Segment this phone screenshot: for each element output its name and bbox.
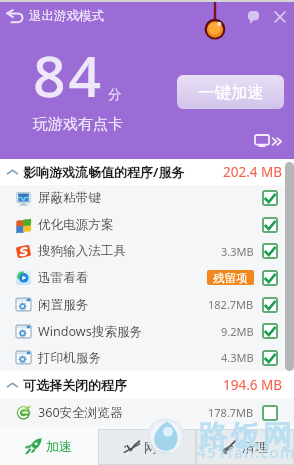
staticText: 451fan.com — [197, 442, 294, 462]
staticText: 分 — [108, 86, 122, 103]
staticText: 屏蔽粘带键 — [38, 190, 101, 206]
button[interactable]: Windows搜索服务 — [16, 318, 278, 344]
button[interactable]: 清理 — [196, 429, 294, 465]
button[interactable]: Toggle item — [262, 323, 278, 339]
button[interactable]: 加速 — [0, 426, 98, 465]
button[interactable]: 网速 — [98, 429, 196, 465]
staticText: 网速 — [144, 439, 170, 455]
staticText: 打印机服务 — [38, 350, 101, 366]
staticText: 3.3MB — [221, 244, 254, 259]
button[interactable]: 搜狗输入法工具 — [16, 238, 278, 264]
button[interactable]: Toggle item — [262, 217, 278, 233]
staticText: Windows搜索服务 — [38, 323, 143, 340]
staticText: 84 — [33, 36, 105, 114]
button[interactable]: Toggle item — [262, 190, 278, 206]
staticText: 玩游戏有点卡 — [33, 115, 123, 134]
staticText: 202.4 MB — [223, 163, 283, 181]
staticText: 一键加速 — [198, 82, 264, 103]
button[interactable]: Toggle item — [262, 350, 278, 366]
button[interactable]: Toggle item — [262, 270, 278, 286]
button[interactable]: Toggle item — [262, 405, 278, 421]
button[interactable]: 闲置服务 — [16, 291, 278, 318]
button[interactable]: 影响游戏流畅值的程序/服务 — [6, 159, 283, 185]
staticText: 182.7MB — [208, 297, 254, 312]
staticText: 可选择关闭的程序 — [23, 377, 127, 393]
button[interactable]: Toggle item — [262, 243, 278, 259]
button[interactable]: Display mode — [253, 133, 284, 149]
staticText: 迅雷看看 — [38, 270, 89, 286]
staticText: 178.7MB — [208, 405, 254, 420]
staticText: 闲置服务 — [38, 297, 89, 313]
button[interactable]: 屏蔽粘带键 — [16, 185, 278, 211]
staticText: 影响游戏流畅值的程序/服务 — [23, 163, 185, 181]
button[interactable]: 360安全浏览器 — [16, 399, 278, 426]
staticText: 9.2MB — [221, 324, 254, 339]
staticText: 优化电源方案 — [38, 217, 114, 233]
staticText: 清理 — [242, 439, 268, 455]
button[interactable]: Feedback — [240, 4, 266, 30]
staticText: 残留项 — [213, 271, 248, 285]
button[interactable]: 可选择关闭的程序 — [6, 371, 283, 399]
staticText: 360安全浏览器 — [38, 404, 123, 421]
staticText: 加速 — [46, 438, 72, 454]
staticText: 退出游戏模式 — [29, 8, 104, 24]
button[interactable]: 打印机服务 — [16, 344, 278, 371]
staticText: 4.3MB — [221, 350, 254, 365]
button[interactable]: Close — [266, 3, 294, 31]
button[interactable]: 优化电源方案 — [16, 211, 278, 238]
button[interactable]: 退出游戏模式 — [3, 4, 107, 28]
staticText: 路饭网 — [197, 418, 293, 455]
button[interactable]: Toggle item — [262, 297, 278, 313]
button[interactable]: 迅雷看看 — [16, 264, 278, 291]
staticText: 194.6 MB — [223, 376, 283, 394]
button[interactable]: 一键加速 — [177, 75, 284, 109]
staticText: 搜狗输入法工具 — [38, 243, 127, 259]
